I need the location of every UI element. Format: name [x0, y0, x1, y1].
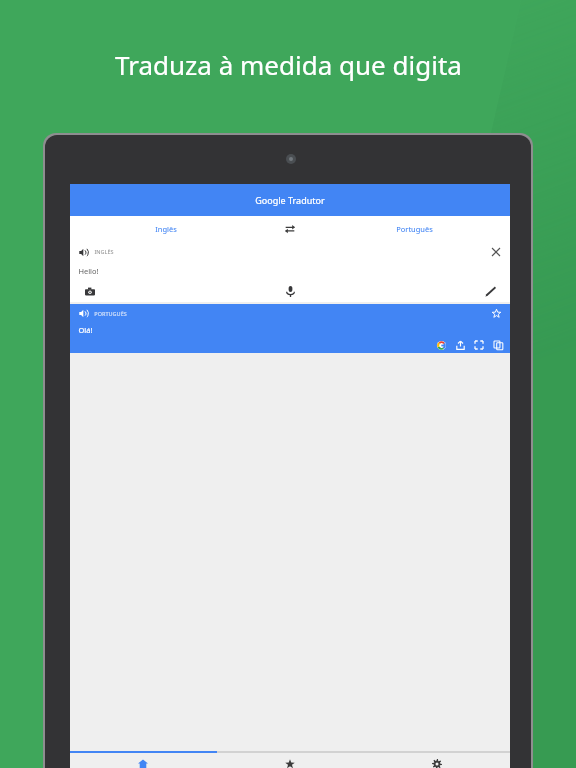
staticText: Inglês: [155, 224, 177, 234]
staticText: Google Tradutor: [255, 194, 325, 206]
staticText: PORTUGUÊS: [94, 310, 127, 317]
button[interactable]: Listen translation: [70, 304, 510, 353]
button[interactable]: Copy: [490, 337, 506, 353]
button[interactable]: Swap languages: [262, 216, 318, 242]
button[interactable]: Search with Google: [433, 337, 449, 353]
button[interactable]: Português: [318, 216, 510, 242]
button[interactable]: Google Tradutor: [70, 184, 510, 216]
button[interactable]: Saved: [216, 753, 363, 768]
button[interactable]: Listen source: [76, 245, 90, 259]
button[interactable]: Share: [452, 337, 468, 353]
staticText: INGLÊS: [94, 248, 114, 255]
button[interactable]: Listen translation: [76, 306, 90, 320]
button[interactable]: Camera input: [70, 281, 110, 302]
staticText: Olá!: [78, 325, 93, 335]
staticText: Português: [396, 224, 433, 234]
button[interactable]: Handwriting input: [470, 281, 510, 302]
staticText: Traduza à medida que digita: [115, 47, 462, 82]
button[interactable]: Voice input: [270, 281, 310, 302]
button[interactable]: Fullscreen: [471, 337, 487, 353]
button[interactable]: Clear text: [488, 244, 504, 260]
staticText: Hello!: [78, 266, 99, 276]
button[interactable]: Settings: [363, 753, 510, 768]
button[interactable]: Inglês: [70, 216, 262, 242]
button[interactable]: Save translation: [488, 305, 504, 321]
button[interactable]: Home: [70, 753, 216, 768]
